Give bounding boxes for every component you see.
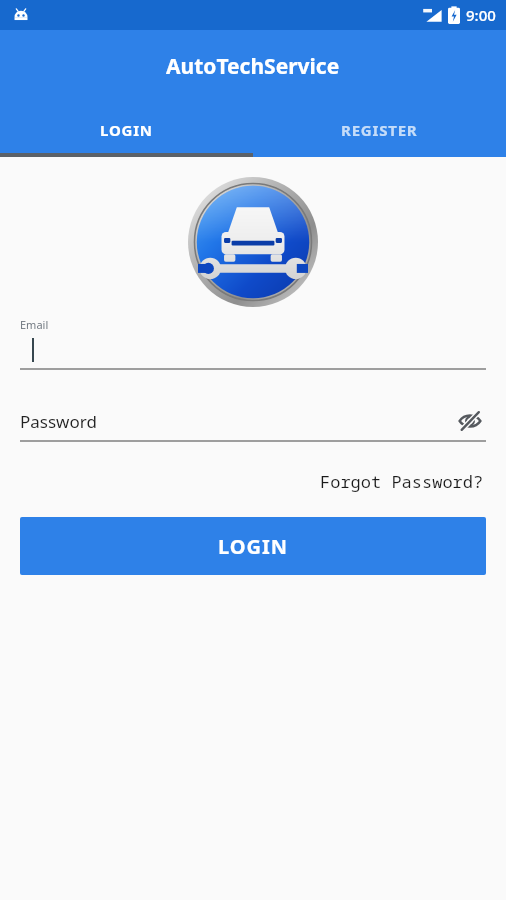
staticText: LOGIN	[218, 533, 289, 560]
button[interactable]: Show password	[454, 405, 486, 437]
button[interactable]: REGISTER	[253, 102, 506, 157]
staticText: LOGIN	[100, 120, 153, 140]
button[interactable]: LOGIN	[20, 517, 486, 575]
staticText: AutoTechService	[166, 52, 340, 81]
button[interactable]: Forgot Password?	[318, 468, 486, 495]
staticText: 9:00	[466, 5, 496, 25]
staticText: Forgot Password?	[320, 470, 484, 493]
staticText: Password	[20, 410, 97, 433]
staticText: REGISTER	[341, 120, 418, 140]
staticText: Email	[20, 317, 49, 332]
button[interactable]: LOGIN	[0, 102, 253, 157]
button[interactable]: Password	[20, 402, 486, 440]
button[interactable]	[20, 332, 486, 368]
